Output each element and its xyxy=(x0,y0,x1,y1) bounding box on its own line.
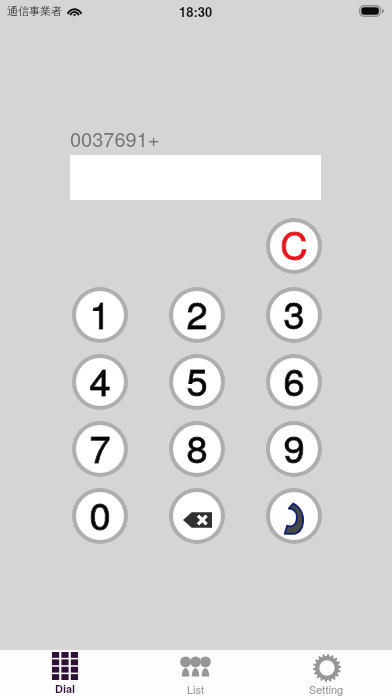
button[interactable]: 1 xyxy=(76,291,124,339)
button[interactable]: C xyxy=(270,222,318,270)
staticText: 6 xyxy=(283,358,305,400)
staticText: 5 xyxy=(186,358,208,400)
staticText: 7 xyxy=(89,425,111,467)
button[interactable]: 9 xyxy=(270,425,318,473)
button[interactable]: 5 xyxy=(173,358,221,406)
staticText: 9 xyxy=(283,425,305,467)
staticText: 3 xyxy=(283,291,305,333)
button[interactable]: 3 xyxy=(270,291,318,339)
staticText: 0037691+ xyxy=(70,124,160,153)
button[interactable]: Dial xyxy=(0,650,130,696)
button[interactable]: 6 xyxy=(270,358,318,406)
button[interactable]: 7 xyxy=(76,425,124,473)
staticText: Dial xyxy=(55,681,76,696)
button[interactable]: 8 xyxy=(173,425,221,473)
button[interactable]: 4 xyxy=(76,358,124,406)
staticText: 3 xyxy=(283,291,305,333)
staticText: 1 xyxy=(89,291,111,333)
staticText: 4 xyxy=(89,358,111,400)
staticText: 8 xyxy=(186,425,208,467)
staticText: 6 xyxy=(283,358,305,400)
button[interactable]: 2 xyxy=(173,291,221,339)
staticText: 0 xyxy=(89,492,111,534)
button[interactable]: 0 xyxy=(76,492,124,540)
staticText: 5 xyxy=(186,358,208,400)
staticText: 0 xyxy=(89,492,111,534)
staticText: Setting xyxy=(309,681,344,696)
staticText: 2 xyxy=(186,291,208,333)
staticText: C xyxy=(280,222,308,264)
staticText: C xyxy=(280,222,308,264)
button[interactable]: Backspace xyxy=(173,492,221,540)
staticText: List xyxy=(187,681,205,696)
staticText: 18:30 xyxy=(179,2,213,21)
staticText: 1 xyxy=(89,291,111,333)
button[interactable]: List xyxy=(130,650,261,696)
staticText: 9 xyxy=(283,425,305,467)
staticText: 4 xyxy=(89,358,111,400)
staticText: 7 xyxy=(89,425,111,467)
button[interactable]: Call xyxy=(270,492,318,540)
staticText: 通信事業者 xyxy=(7,4,62,18)
staticText: 8 xyxy=(186,425,208,467)
button[interactable]: Setting xyxy=(261,650,392,696)
staticText: 2 xyxy=(186,291,208,333)
